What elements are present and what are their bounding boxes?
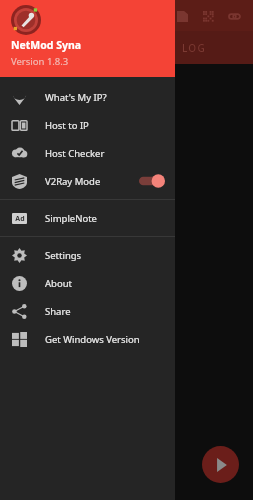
- staticText: NetMod Syna: [11, 38, 82, 52]
- staticText: SimpleNote: [45, 212, 97, 225]
- staticText: LOG: [182, 41, 206, 55]
- staticText: V2Ray Mode: [45, 175, 101, 188]
- button[interactable]: Scan QR code: [195, 3, 221, 29]
- staticText: About: [45, 277, 72, 290]
- staticText: Share: [45, 305, 71, 318]
- button[interactable]: Share: [0, 297, 175, 325]
- button[interactable]: Host to IP: [0, 111, 175, 139]
- staticText: Host Checker: [45, 147, 105, 160]
- button[interactable]: Import from link: [221, 3, 247, 29]
- staticText: Settings: [45, 249, 82, 262]
- button[interactable]: What's My IP?: [0, 83, 175, 111]
- staticText: Version 1.8.3: [11, 55, 69, 68]
- button[interactable]: Get Windows Version: [0, 325, 175, 353]
- button[interactable]: Host Checker: [0, 139, 175, 167]
- button[interactable]: LOG: [182, 41, 206, 55]
- staticText: Ad: [15, 214, 25, 224]
- button[interactable]: About: [0, 269, 175, 297]
- button[interactable]: Settings: [0, 241, 175, 269]
- staticText: Get Windows Version: [45, 333, 140, 346]
- staticText: What's My IP?: [45, 91, 107, 104]
- button[interactable]: Start: [202, 446, 239, 483]
- button[interactable]: Ad: [0, 204, 175, 232]
- staticText: Host to IP: [45, 119, 89, 132]
- button[interactable]: Import file: [169, 3, 195, 29]
- button[interactable]: V2Ray Mode: [0, 167, 175, 195]
